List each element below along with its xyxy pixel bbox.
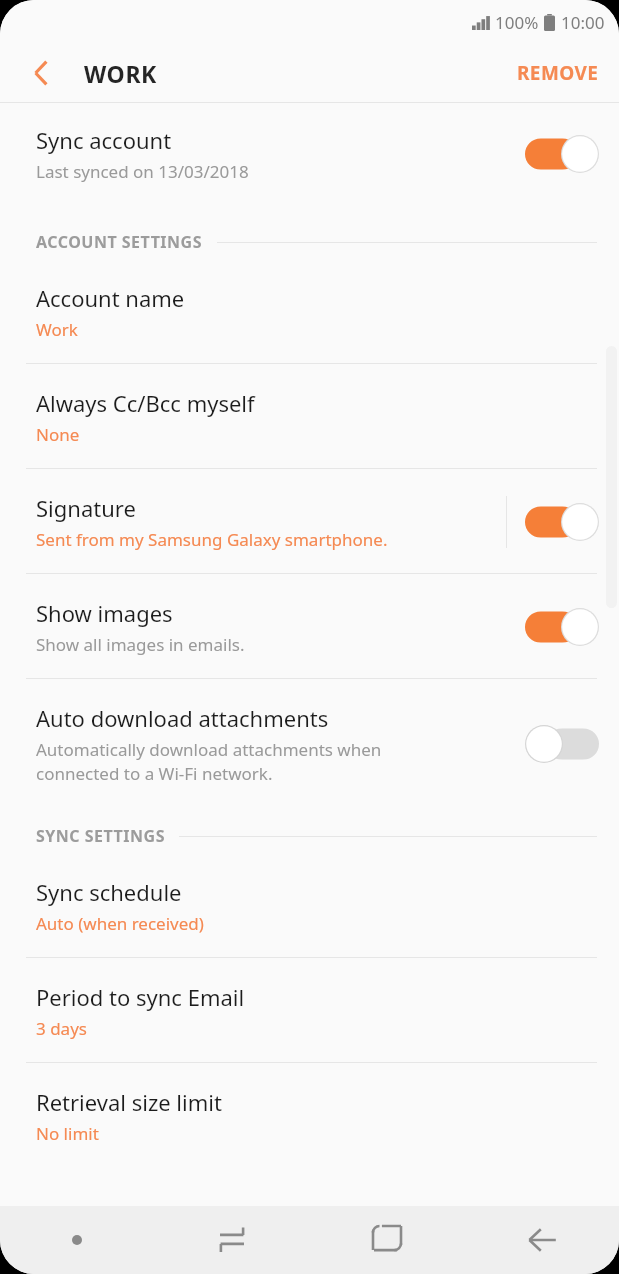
staticText: 100% xyxy=(495,11,539,34)
staticText: Auto download attachments xyxy=(36,703,329,733)
staticText: SYNC SETTINGS xyxy=(36,825,165,847)
button[interactable]: Back xyxy=(18,49,66,97)
staticText: Period to sync Email xyxy=(36,982,245,1012)
button[interactable]: Sync schedule xyxy=(0,853,619,957)
button[interactable]: Toggle on xyxy=(525,503,599,541)
button[interactable]: Assistant xyxy=(0,1206,154,1274)
staticText: Sent from my Samsung Galaxy smartphone. xyxy=(36,528,388,551)
staticText: Show images xyxy=(36,598,173,628)
staticText: REMOVE xyxy=(517,60,599,86)
staticText: Auto (when received) xyxy=(36,912,204,935)
staticText: None xyxy=(36,423,80,446)
staticText: Sync schedule xyxy=(36,877,182,907)
button[interactable]: REMOVE xyxy=(497,48,619,98)
staticText: 3 days xyxy=(36,1017,87,1040)
button[interactable]: Sync account xyxy=(0,103,619,205)
button[interactable]: Retrieval size limit xyxy=(0,1063,619,1155)
button[interactable]: Toggle on xyxy=(525,135,599,173)
button[interactable]: Auto download attachments xyxy=(0,679,619,807)
staticText: Work xyxy=(36,318,78,341)
staticText: WORK xyxy=(84,58,157,89)
staticText: Automatically download attachments when … xyxy=(36,738,382,785)
button[interactable]: Toggle on xyxy=(525,608,599,646)
staticText: Show all images in emails. xyxy=(36,633,245,656)
button[interactable]: Period to sync Email xyxy=(0,958,619,1062)
button[interactable]: Home xyxy=(309,1206,464,1274)
button[interactable]: Toggle off xyxy=(525,725,599,763)
button[interactable]: Recents xyxy=(154,1206,309,1274)
staticText: Sync account xyxy=(36,125,172,155)
staticText: Always Cc/Bcc myself xyxy=(36,388,255,418)
button[interactable]: Signature xyxy=(0,469,619,573)
staticText: Signature xyxy=(36,493,136,523)
staticText: No limit xyxy=(36,1122,99,1145)
button[interactable]: Back xyxy=(464,1206,619,1274)
button[interactable]: Account name xyxy=(0,259,619,363)
staticText: ACCOUNT SETTINGS xyxy=(36,231,203,253)
staticText: Account name xyxy=(36,283,185,313)
button[interactable]: Always Cc/Bcc myself xyxy=(0,364,619,468)
staticText: Retrieval size limit xyxy=(36,1087,222,1117)
button[interactable]: Show images xyxy=(0,574,619,678)
staticText: 10:00 xyxy=(561,11,605,34)
staticText: Last synced on 13/03/2018 xyxy=(36,160,249,183)
